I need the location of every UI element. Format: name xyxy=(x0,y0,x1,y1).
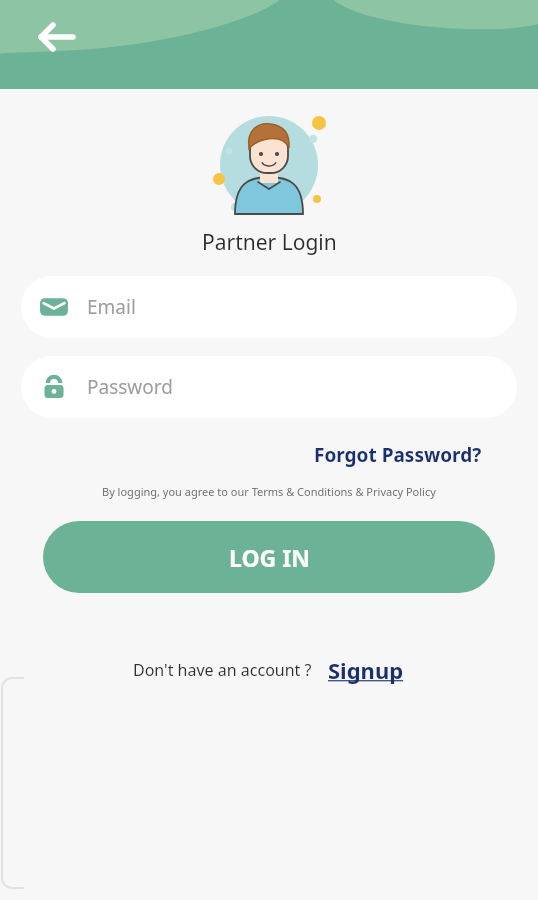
button[interactable]: Forgot Password? xyxy=(310,440,486,470)
staticText: Password xyxy=(87,374,173,400)
button[interactable]: Email xyxy=(21,276,517,338)
staticText: Forgot Password? xyxy=(314,442,482,468)
staticText: By logging, you agree to our Terms & Con… xyxy=(102,484,436,499)
staticText: Signup xyxy=(328,655,404,685)
staticText: LOG IN xyxy=(229,542,310,573)
staticText: Don't have an account ? xyxy=(133,659,312,681)
button[interactable]: Signup xyxy=(326,653,406,687)
button[interactable]: LOG IN xyxy=(43,521,495,593)
staticText: Email xyxy=(87,294,136,320)
button[interactable]: Password xyxy=(21,356,517,418)
staticText: Partner Login xyxy=(202,228,337,257)
button[interactable]: Back xyxy=(33,13,81,61)
